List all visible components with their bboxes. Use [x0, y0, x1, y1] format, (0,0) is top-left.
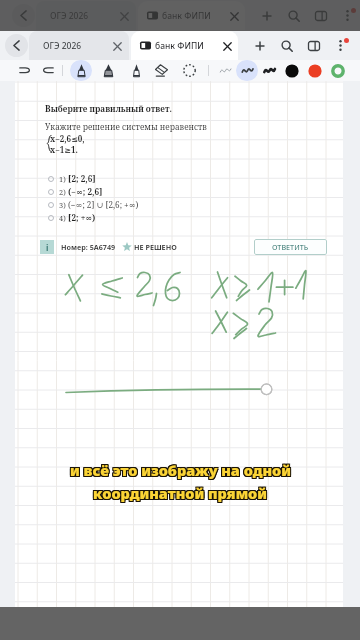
button[interactable]: New tab [248, 34, 271, 57]
button[interactable]: Colour [327, 60, 349, 81]
button[interactable]: банк ФИПИ [138, 1, 245, 30]
staticText: 1) [59, 174, 68, 184]
staticText: координатной прямой [92, 482, 266, 502]
staticText: и всё это изображу на одной [71, 460, 292, 480]
staticText: Номер: 5A6749 [61, 242, 116, 252]
staticText: i [46, 242, 49, 253]
staticText: координатной прямой [94, 484, 268, 504]
button[interactable]: Thick stroke [258, 60, 280, 81]
staticText: x−2,6≤0, [50, 133, 85, 144]
staticText: и всё это изображу на одной [69, 460, 290, 480]
staticText: координатной прямой [93, 483, 267, 503]
staticText: и всё это изображу на одной [69, 459, 290, 479]
staticText: координатной прямой [92, 482, 266, 502]
staticText: 4) [59, 213, 68, 223]
staticText: и всё это изображу на одной [69, 461, 290, 481]
staticText: и всё это изображу на одной [71, 459, 292, 479]
button[interactable]: Colour [281, 60, 303, 81]
button[interactable]: Tab overview [309, 4, 332, 27]
staticText: (−∞; 2,6] [68, 186, 103, 197]
button[interactable]: Info [40, 240, 54, 254]
staticText: 2) [59, 187, 68, 197]
staticText: координатной прямой [93, 482, 267, 502]
button[interactable]: Medium stroke [236, 60, 258, 81]
button[interactable]: Close tab [226, 8, 242, 24]
button[interactable]: Close tab [109, 38, 125, 54]
staticText: и всё это изображу на одной [70, 461, 291, 481]
staticText: и всё это изображу на одной [69, 461, 290, 481]
button[interactable]: Thin stroke [214, 60, 236, 81]
staticText: координатной прямой [94, 482, 268, 502]
button[interactable]: Close tab [116, 8, 132, 24]
button[interactable]: 3) [48, 198, 338, 211]
button[interactable]: More options [336, 4, 359, 27]
staticText: и всё это изображу на одной [71, 461, 292, 481]
staticText: ОГЭ 2026 [43, 40, 82, 52]
staticText: ОТВЕТИТЬ [272, 242, 309, 252]
staticText: НЕ РЕШЕНО [134, 242, 177, 252]
staticText: и всё это изображу на одной [70, 460, 291, 480]
staticText: координатной прямой [94, 484, 268, 504]
staticText: банк ФИПИ [155, 40, 204, 52]
staticText: [2; 2,6] [68, 173, 96, 184]
staticText: координатной прямой [93, 484, 267, 504]
staticText: и всё это изображу на одной [69, 459, 290, 479]
staticText: координатной прямой [92, 484, 266, 504]
button[interactable]: Pencil [125, 60, 147, 81]
button[interactable]: New tab [255, 4, 278, 27]
button[interactable]: Close tab [219, 38, 235, 54]
button[interactable]: 2) [48, 185, 338, 198]
staticText: и всё это изображу на одной [69, 461, 290, 481]
staticText: координатной прямой [94, 483, 268, 503]
button[interactable]: ОТВЕТИТЬ [254, 239, 327, 255]
button[interactable]: More options [329, 34, 352, 57]
button[interactable]: Tab overview [302, 34, 325, 57]
staticText: и всё это изображу на одной [71, 459, 292, 479]
button[interactable]: банк ФИПИ [131, 31, 238, 60]
staticText: и всё это изображу на одной [71, 459, 292, 479]
staticText: координатной прямой [92, 484, 266, 504]
staticText: координатной прямой [94, 482, 268, 502]
button[interactable]: Back [5, 34, 28, 57]
button[interactable]: 4) [48, 211, 338, 224]
staticText: и всё это изображу на одной [71, 461, 292, 481]
button[interactable]: Back [12, 4, 35, 27]
button[interactable]: Colour [304, 60, 326, 81]
staticText: и всё это изображу на одной [69, 459, 290, 479]
staticText: координатной прямой [94, 482, 268, 502]
staticText: (−∞; 2] ∪ [2,6; +∞) [68, 199, 139, 210]
staticText: x−1≥1. [50, 144, 78, 155]
staticText: 3) [59, 200, 68, 210]
button[interactable]: ОГЭ 2026 [29, 31, 129, 60]
button[interactable]: Eraser [150, 60, 172, 81]
button[interactable]: Marker [97, 60, 119, 81]
button[interactable]: ОГЭ 2026 [36, 1, 136, 30]
staticText: Выберите правильный ответ. [45, 103, 172, 114]
staticText: координатной прямой [94, 484, 268, 504]
staticText: координатной прямой [92, 484, 266, 504]
button[interactable]: Pen [70, 60, 92, 81]
button[interactable]: Redo [37, 60, 59, 81]
staticText: ОГЭ 2026 [50, 10, 89, 22]
staticText: [2; +∞) [68, 212, 96, 223]
staticText: координатной прямой [92, 483, 266, 503]
button[interactable]: Lasso select [178, 60, 200, 81]
staticText: координатной прямой [92, 482, 266, 502]
staticText: и всё это изображу на одной [71, 461, 292, 481]
staticText: Укажите решение системы неравенств [45, 121, 207, 132]
button[interactable]: Search [282, 4, 305, 27]
staticText: банк ФИПИ [162, 10, 211, 22]
staticText: и всё это изображу на одной [70, 459, 291, 479]
button[interactable]: Search [275, 34, 298, 57]
button[interactable]: 1) [48, 172, 338, 185]
button[interactable]: Undo [13, 60, 35, 81]
